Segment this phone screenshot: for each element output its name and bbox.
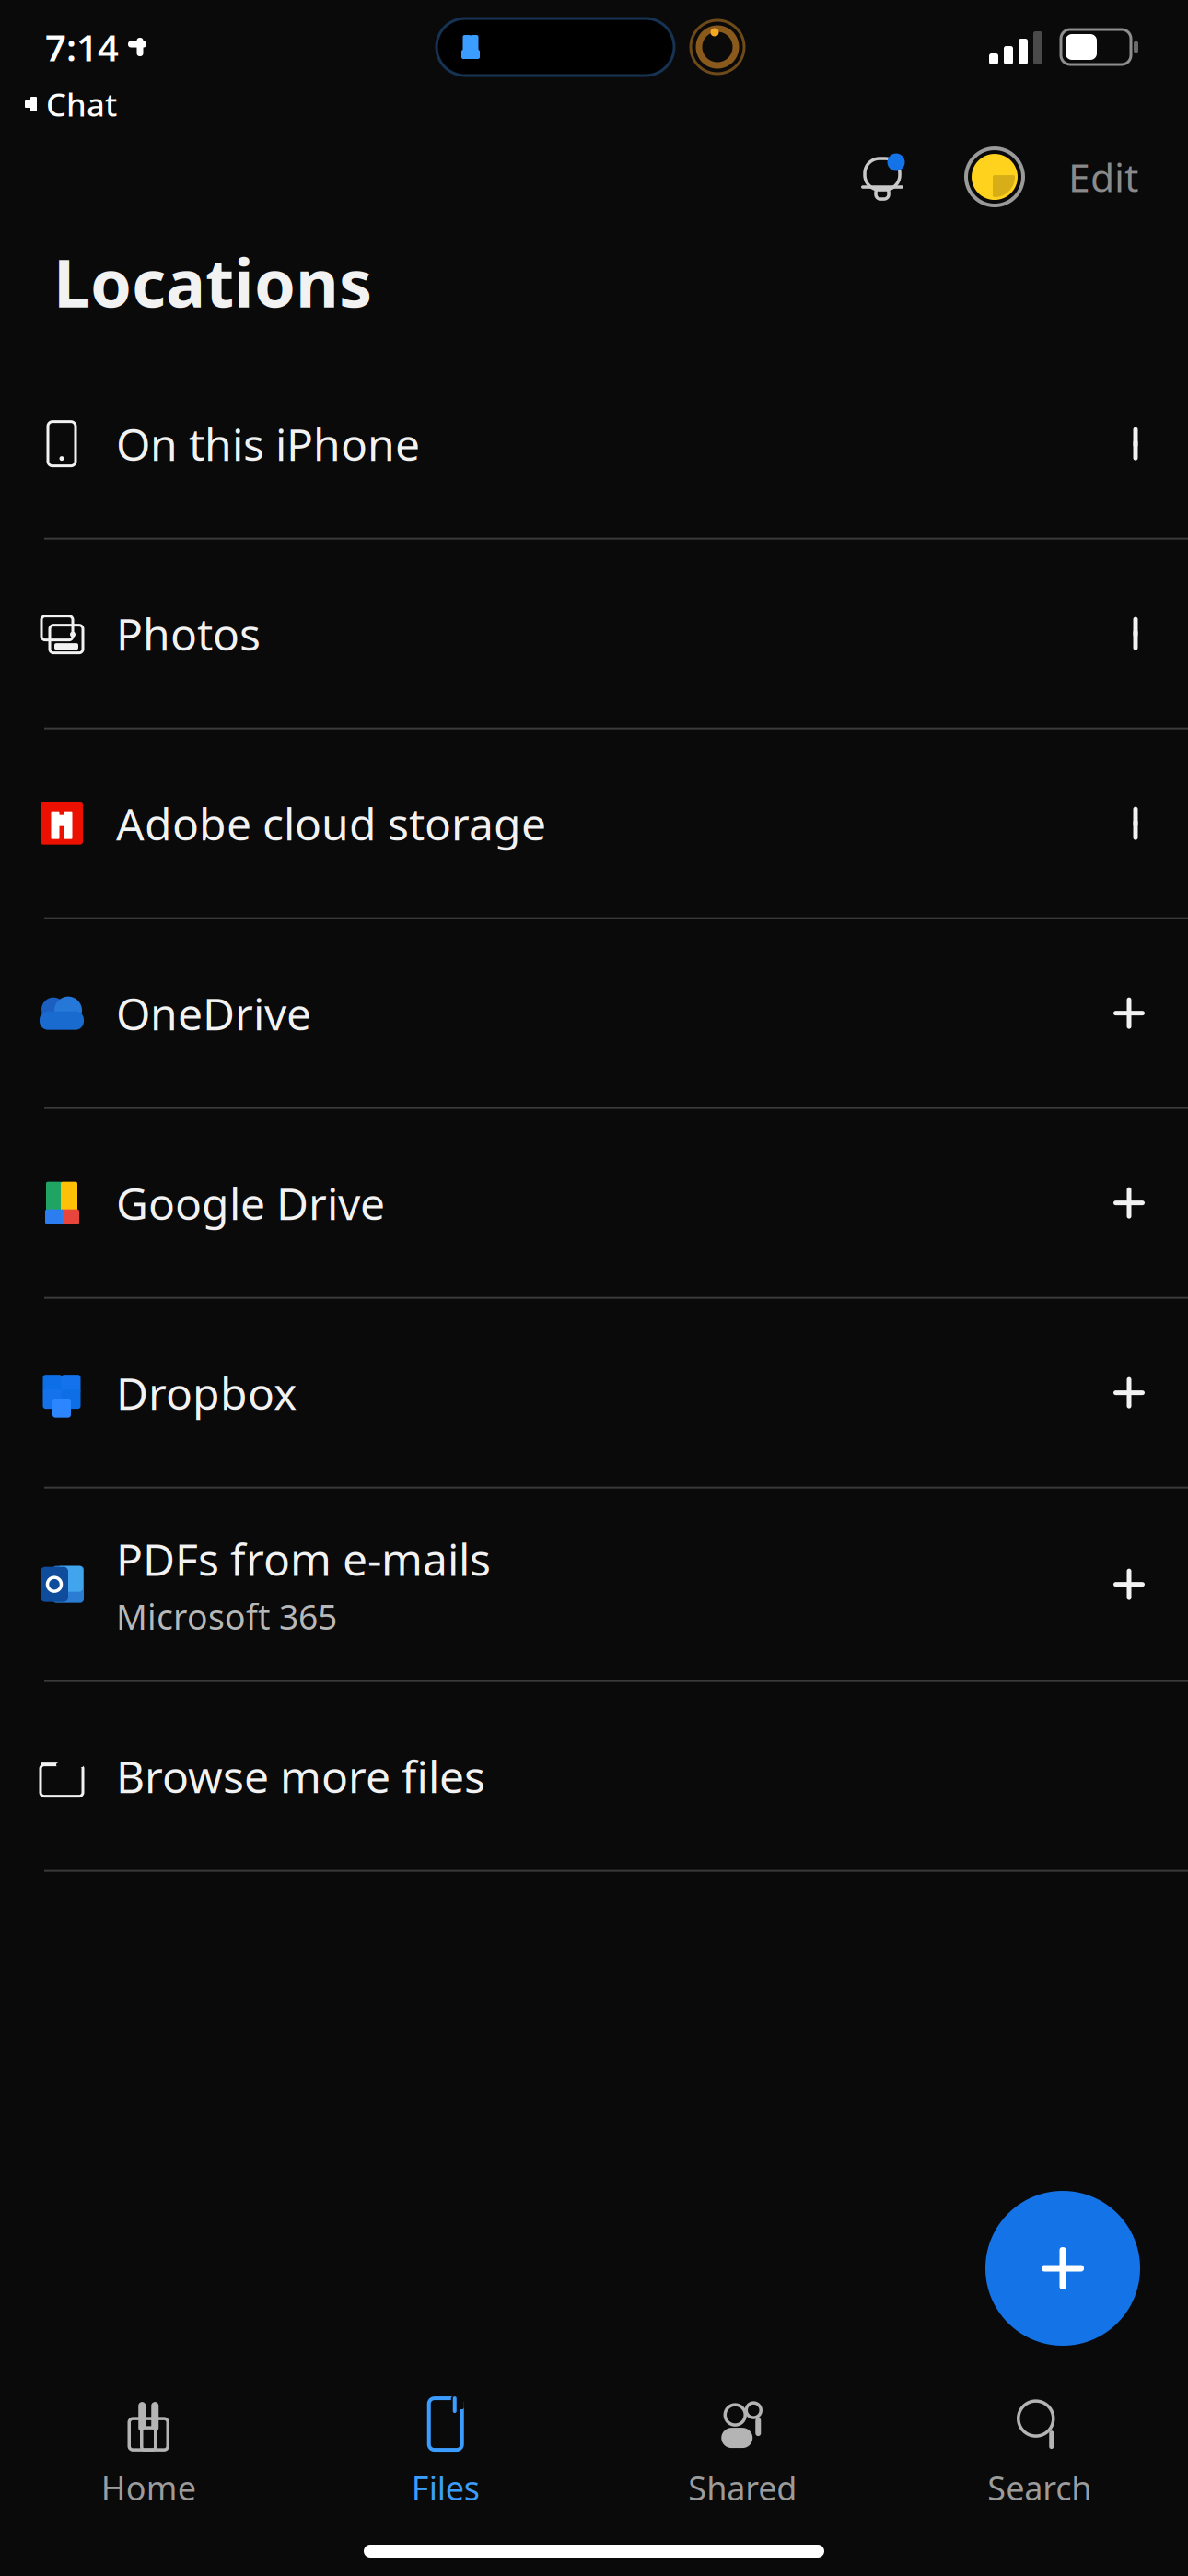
button[interactable]: PDFs from e-mails <box>0 1488 1188 1680</box>
staticText: Browse more files <box>116 1747 485 1805</box>
button[interactable]: Google Drive <box>0 1109 1188 1297</box>
staticText: Google Drive <box>116 1174 385 1232</box>
staticText: OneDrive <box>116 984 311 1042</box>
button[interactable]: Account <box>963 146 1026 208</box>
staticText: On this iPhone <box>116 414 420 473</box>
staticText: Edit <box>1068 151 1138 203</box>
button[interactable]: Adobe cloud storage <box>0 729 1188 917</box>
button[interactable]: Home <box>0 2383 297 2522</box>
button[interactable]: Dropbox <box>0 1299 1188 1487</box>
staticText: Chat <box>46 83 117 125</box>
button[interactable]: Files <box>297 2383 594 2522</box>
button[interactable]: Browse more files <box>0 1682 1188 1870</box>
staticText: Shared <box>688 2466 797 2510</box>
staticText: Photos <box>116 604 261 663</box>
staticText: Locations <box>53 238 372 326</box>
staticText: Microsoft 365 <box>116 1594 337 1639</box>
staticText: Home <box>101 2466 196 2510</box>
button[interactable]: OneDrive <box>0 919 1188 1107</box>
staticText: Search <box>987 2466 1091 2510</box>
staticText: 7:14 <box>45 22 119 71</box>
staticText: Adobe cloud storage <box>116 794 546 853</box>
button[interactable]: Photos <box>0 540 1188 727</box>
button[interactable]: Shared <box>594 2383 891 2522</box>
staticText: Files <box>411 2466 480 2510</box>
staticText: PDFs from e-mails <box>116 1529 491 1588</box>
button[interactable]: Search <box>891 2383 1188 2522</box>
button[interactable]: Create <box>985 2191 1140 2346</box>
button[interactable]: On this iPhone <box>0 350 1188 538</box>
button[interactable]: Edit <box>1068 151 1138 203</box>
button[interactable]: Notifications <box>853 147 912 206</box>
staticText: Dropbox <box>116 1363 297 1422</box>
